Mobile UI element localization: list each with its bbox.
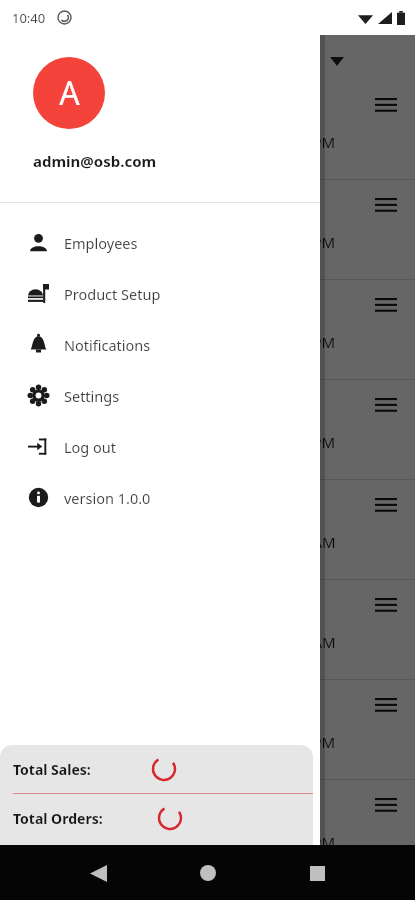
other: Menu xyxy=(375,498,397,512)
staticText: 4 AM xyxy=(300,532,336,552)
other: Menu xyxy=(375,298,397,312)
button[interactable]: Log out xyxy=(0,421,320,472)
button[interactable]: version 1.0.0 xyxy=(0,472,320,523)
other: Menu xyxy=(375,598,397,612)
button[interactable]: Home xyxy=(188,853,228,893)
staticText: Settings xyxy=(64,386,120,406)
other: Menu xyxy=(375,98,397,112)
button[interactable]: Notifications xyxy=(0,319,320,370)
staticText: 10:40 xyxy=(12,9,46,27)
button[interactable]: Menu xyxy=(0,480,415,580)
staticText: 9 PM xyxy=(300,232,336,252)
staticText: 1 PM xyxy=(300,132,336,152)
button[interactable]: Menu xyxy=(0,580,415,680)
staticText: 5 PM xyxy=(300,332,336,352)
staticText: Total Sales: xyxy=(13,760,91,779)
button[interactable]: Product Setup xyxy=(0,268,320,319)
staticText: Notifications xyxy=(64,335,151,355)
button[interactable]: Menu xyxy=(0,280,415,380)
button[interactable]: Menu xyxy=(0,680,415,780)
other: Menu xyxy=(375,398,397,412)
other: Menu xyxy=(375,698,397,712)
button[interactable]: A xyxy=(33,57,105,129)
staticText: version 1.0.0 xyxy=(64,488,151,508)
staticText: Employees xyxy=(64,233,138,253)
button[interactable]: Settings xyxy=(0,370,320,421)
button[interactable]: Back xyxy=(78,853,118,893)
staticText: Total Orders: xyxy=(13,809,103,828)
staticText: A xyxy=(59,71,80,115)
staticText: 5 AM xyxy=(300,632,336,652)
staticText: 1 PM xyxy=(300,432,336,452)
button[interactable]: Menu xyxy=(0,80,415,180)
button[interactable]: Recent apps xyxy=(297,853,337,893)
staticText: 1 PM xyxy=(300,732,336,752)
staticText: 9 PM xyxy=(300,832,336,852)
staticText: admin@osb.com xyxy=(33,151,157,171)
button[interactable]: Employees xyxy=(0,217,320,268)
staticText: Product Setup xyxy=(64,284,161,304)
button[interactable]: Menu xyxy=(0,180,415,280)
staticText: Log out xyxy=(64,437,117,457)
button[interactable]: Menu xyxy=(0,380,415,480)
other: Menu xyxy=(375,798,397,812)
button[interactable]: Menu xyxy=(0,780,415,880)
other: Menu xyxy=(375,198,397,212)
